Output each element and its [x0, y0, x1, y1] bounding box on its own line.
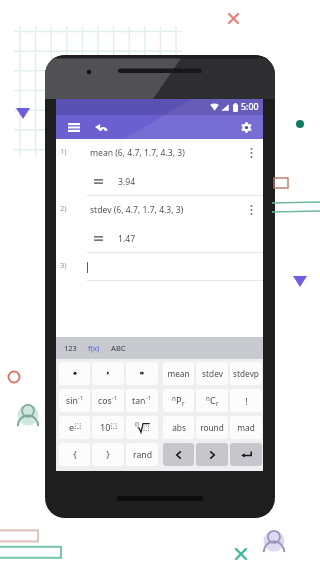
staticText: stdevp: [233, 368, 259, 379]
button[interactable]: 2): [56, 196, 263, 253]
button[interactable]: stdev: [196, 362, 228, 385]
button[interactable]: e: [59, 416, 90, 439]
button[interactable]: mean: [163, 362, 194, 385]
staticText: C: [210, 394, 216, 407]
button[interactable]: [59, 362, 90, 385]
staticText: f(x): [88, 343, 100, 353]
other: Move left: [175, 450, 182, 460]
staticText: 5:00: [241, 101, 259, 113]
button[interactable]: Move right: [196, 443, 228, 466]
staticText: ABC: [111, 343, 126, 353]
staticText: 2): [60, 203, 67, 213]
staticText: 3.94: [118, 176, 136, 188]
staticText: -1: [78, 394, 84, 402]
button[interactable]: Settings: [234, 115, 258, 139]
button[interactable]: 3): [56, 253, 263, 281]
staticText: mean (6, 4.7, 1.7, 4.3, 3): [90, 147, 185, 159]
button[interactable]: ABC: [107, 340, 130, 356]
staticText: cos: [98, 395, 112, 407]
button[interactable]: {: [59, 443, 90, 466]
button[interactable]: round: [196, 416, 228, 439]
button[interactable]: Undo: [89, 115, 113, 139]
staticText: 10: [100, 421, 111, 434]
button[interactable]: Enter: [230, 443, 262, 466]
staticText: -1: [112, 394, 118, 402]
staticText: stdev (6, 4.7, 1.7, 4.3, 3): [90, 204, 184, 216]
other: Move right: [209, 450, 216, 460]
button[interactable]: More options: [247, 146, 255, 160]
button[interactable]: !: [230, 389, 262, 412]
staticText: {: [73, 448, 77, 461]
staticText: P: [176, 394, 182, 407]
button[interactable]: More options: [247, 203, 255, 217]
staticText: rand: [133, 449, 152, 461]
button[interactable]: n: [196, 389, 228, 412]
staticText: }: [106, 448, 110, 461]
button[interactable]: tan: [126, 389, 158, 412]
button[interactable]: n: [163, 389, 194, 412]
other: Enter: [241, 450, 252, 459]
staticText: round: [200, 422, 224, 433]
staticText: 3): [60, 260, 67, 270]
staticText: 123: [64, 343, 77, 353]
staticText: r: [182, 399, 185, 407]
button[interactable]: }: [92, 443, 124, 466]
staticText: mad: [237, 422, 255, 433]
button[interactable]: 1): [56, 139, 263, 196]
button[interactable]: stdevp: [230, 362, 262, 385]
staticText: r: [216, 399, 219, 407]
button[interactable]: [92, 362, 124, 385]
button[interactable]: f(x): [84, 340, 104, 356]
button[interactable]: sin: [59, 389, 90, 412]
button[interactable]: mad: [230, 416, 262, 439]
staticText: abs: [172, 422, 186, 433]
staticText: 1.47: [118, 233, 136, 245]
button[interactable]: 10: [92, 416, 124, 439]
staticText: sin: [66, 395, 78, 407]
staticText: !: [245, 395, 248, 407]
button[interactable]: cos: [92, 389, 124, 412]
staticText: -1: [146, 394, 152, 402]
button[interactable]: Menu: [62, 115, 86, 139]
button[interactable]: [126, 416, 158, 439]
staticText: n: [206, 394, 210, 402]
button[interactable]: [126, 362, 158, 385]
staticText: stdev: [202, 368, 223, 379]
button[interactable]: Move left: [163, 443, 194, 466]
staticText: 1): [60, 146, 67, 156]
staticText: n: [172, 394, 176, 402]
button[interactable]: rand: [126, 443, 158, 466]
staticText: mean: [167, 368, 190, 379]
button[interactable]: abs: [163, 416, 194, 439]
button[interactable]: 123: [60, 340, 81, 356]
staticText: tan: [132, 395, 146, 407]
staticText: e: [69, 421, 75, 434]
